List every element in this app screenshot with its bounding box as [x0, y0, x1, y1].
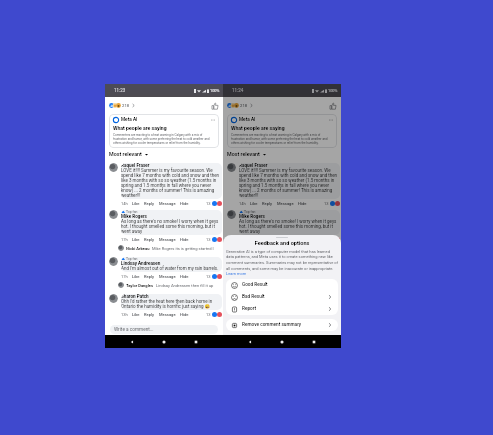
button[interactable]: Hide — [180, 237, 189, 242]
button[interactable]: Reply — [144, 201, 155, 206]
button[interactable]: More options — [210, 117, 216, 123]
button[interactable]: Top fan — [121, 210, 222, 235]
button[interactable]: Write a comment... — [110, 325, 218, 334]
button[interactable]: Message — [159, 201, 176, 206]
staticText: 13 — [324, 312, 329, 317]
button[interactable]: Back — [247, 339, 253, 345]
button[interactable]: Learn more — [226, 271, 247, 276]
staticText: 17h — [239, 274, 246, 279]
button[interactable]: Like — [250, 201, 258, 206]
button[interactable]: Like — [211, 102, 219, 110]
button[interactable]: Reply — [144, 274, 155, 279]
button[interactable]: Bad Result — [226, 291, 338, 303]
staticText: And I'm almost out of water from my rain… — [121, 266, 219, 271]
button[interactable]: Nicki Arbeau — [234, 244, 337, 252]
button[interactable]: Hide — [298, 201, 307, 206]
button[interactable]: Message — [159, 237, 176, 242]
staticText: 13h — [239, 312, 246, 317]
staticText: Sharon Patch — [121, 294, 149, 299]
button[interactable]: Most relevant — [109, 148, 149, 160]
staticText: Nicki Arbeau — [126, 246, 150, 251]
staticText: 11:24 — [232, 88, 244, 93]
button[interactable]: Sharon Patch — [121, 294, 222, 310]
staticText: Mike Rogers its is getting started I rea… — [270, 246, 334, 251]
staticText: 17h — [121, 237, 128, 242]
staticText: 218 — [240, 103, 248, 108]
button[interactable]: Taylor Dangles — [234, 281, 337, 289]
button[interactable]: Home — [279, 339, 285, 345]
button[interactable]: Message — [277, 312, 294, 317]
staticText: Mike Rogers — [121, 214, 147, 219]
button[interactable]: Message — [159, 274, 176, 279]
button[interactable]: Reply — [262, 237, 273, 242]
button[interactable]: Message — [277, 201, 294, 206]
button[interactable]: Nicki Arbeau — [116, 244, 219, 252]
button[interactable]: Hide — [180, 201, 189, 206]
staticText: 17h — [121, 274, 128, 279]
staticText: Meta AI — [121, 117, 138, 123]
button[interactable]: Like — [132, 274, 140, 279]
button[interactable]: Reply — [262, 312, 273, 317]
button[interactable]: Message — [159, 312, 176, 317]
button[interactable]: Top fan — [239, 257, 340, 272]
button[interactable]: Hide — [298, 237, 307, 242]
staticText: LOVE it!!!! Summer is my favourite seaso… — [121, 168, 222, 198]
button[interactable]: Recents — [311, 339, 317, 345]
button[interactable]: Home — [161, 339, 167, 345]
button[interactable]: Raquel Fraser — [239, 163, 340, 199]
button[interactable]: Reply — [144, 237, 155, 242]
button[interactable]: Like — [250, 312, 258, 317]
button[interactable]: Top fan — [121, 257, 222, 272]
button[interactable]: Taylor Dangles — [116, 281, 219, 289]
button[interactable]: Top fan — [239, 210, 340, 235]
button[interactable]: Like — [132, 201, 140, 206]
button[interactable]: 218 — [109, 103, 136, 108]
button[interactable]: Like — [132, 237, 140, 242]
staticText: And I'm almost out of water from my rain… — [239, 266, 337, 271]
button[interactable]: Like — [250, 237, 258, 242]
button[interactable]: Hide — [180, 312, 189, 317]
button[interactable]: Good Result — [226, 279, 338, 291]
staticText: Taylor Dangles — [126, 283, 154, 288]
button[interactable]: Write a comment... — [228, 325, 336, 334]
button[interactable]: Raquel Fraser — [121, 163, 222, 199]
staticText: Meta AI — [239, 117, 256, 123]
staticText: 13h — [121, 312, 128, 317]
button[interactable]: Recents — [193, 339, 199, 345]
button[interactable]: Recents — [311, 339, 317, 345]
button[interactable]: Hide — [298, 312, 307, 317]
button[interactable]: Meta AI — [227, 114, 337, 148]
staticText: 14h — [121, 201, 128, 206]
button[interactable]: Back — [129, 339, 135, 345]
button[interactable]: Remove comment summary — [226, 319, 338, 331]
button[interactable]: Back — [247, 339, 253, 345]
staticText: 100% — [328, 88, 338, 93]
button[interactable]: Reply — [144, 312, 155, 317]
staticText: Lindsay Andreasen — [239, 261, 279, 266]
staticText: Generative AI is a type of computer mode… — [226, 249, 338, 271]
button[interactable]: More options — [328, 117, 334, 123]
button[interactable]: 218 — [227, 103, 254, 108]
button[interactable]: Like — [329, 102, 337, 110]
staticText: Raquel Fraser — [121, 163, 150, 168]
button[interactable]: Sharon Patch — [239, 294, 340, 310]
button[interactable]: Like — [132, 312, 140, 317]
staticText: Top fan — [244, 257, 256, 261]
button[interactable]: Reply — [262, 201, 273, 206]
button[interactable]: Meta AI — [109, 114, 219, 148]
button[interactable]: Most relevant — [227, 148, 267, 160]
button[interactable]: Report — [226, 303, 338, 315]
staticText: Ohh I'd rather the heat here then back h… — [239, 299, 340, 309]
button[interactable]: Home — [279, 339, 285, 345]
staticText: 13 — [206, 274, 211, 279]
staticText: LOVE it!!!! Summer is my favourite seaso… — [239, 168, 340, 198]
button[interactable]: Message — [277, 237, 294, 242]
button[interactable]: Hide — [180, 274, 189, 279]
staticText: 13 — [206, 201, 211, 206]
